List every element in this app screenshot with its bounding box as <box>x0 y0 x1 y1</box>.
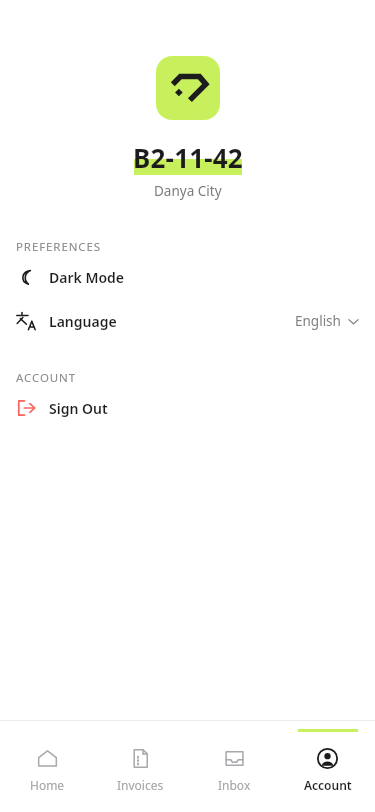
staticText: Language <box>49 312 117 331</box>
staticText: Account <box>304 777 352 793</box>
other: Dark Mode <box>16 267 36 287</box>
button[interactable]: Invoices <box>94 721 187 793</box>
staticText: Danya City <box>154 182 222 200</box>
button[interactable]: Sign Out <box>0 386 375 430</box>
staticText: B2-11-42 <box>133 140 243 175</box>
other: Sign Out <box>16 398 36 418</box>
staticText: Invoices <box>117 777 164 793</box>
staticText: Home <box>30 777 65 793</box>
button[interactable]: Language <box>0 299 375 343</box>
staticText: Dark Mode <box>49 268 124 287</box>
button[interactable]: Home <box>1 721 94 793</box>
staticText: ACCOUNT <box>16 370 77 386</box>
staticText: Sign Out <box>49 399 108 418</box>
button[interactable]: Inbox <box>188 721 281 793</box>
staticText: Inbox <box>218 777 251 793</box>
other: Language <box>16 311 36 331</box>
staticText: English <box>295 312 341 330</box>
button[interactable]: Dark Mode <box>0 255 375 299</box>
button[interactable]: Account <box>281 721 374 793</box>
staticText: PREFERENCES <box>16 239 102 255</box>
